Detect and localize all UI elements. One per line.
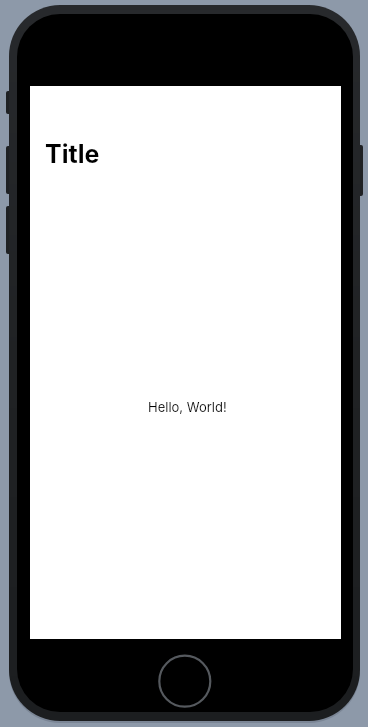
staticText: Hello, World!: [148, 399, 227, 415]
button[interactable]: [159, 656, 211, 708]
staticText: Title: [45, 139, 100, 169]
